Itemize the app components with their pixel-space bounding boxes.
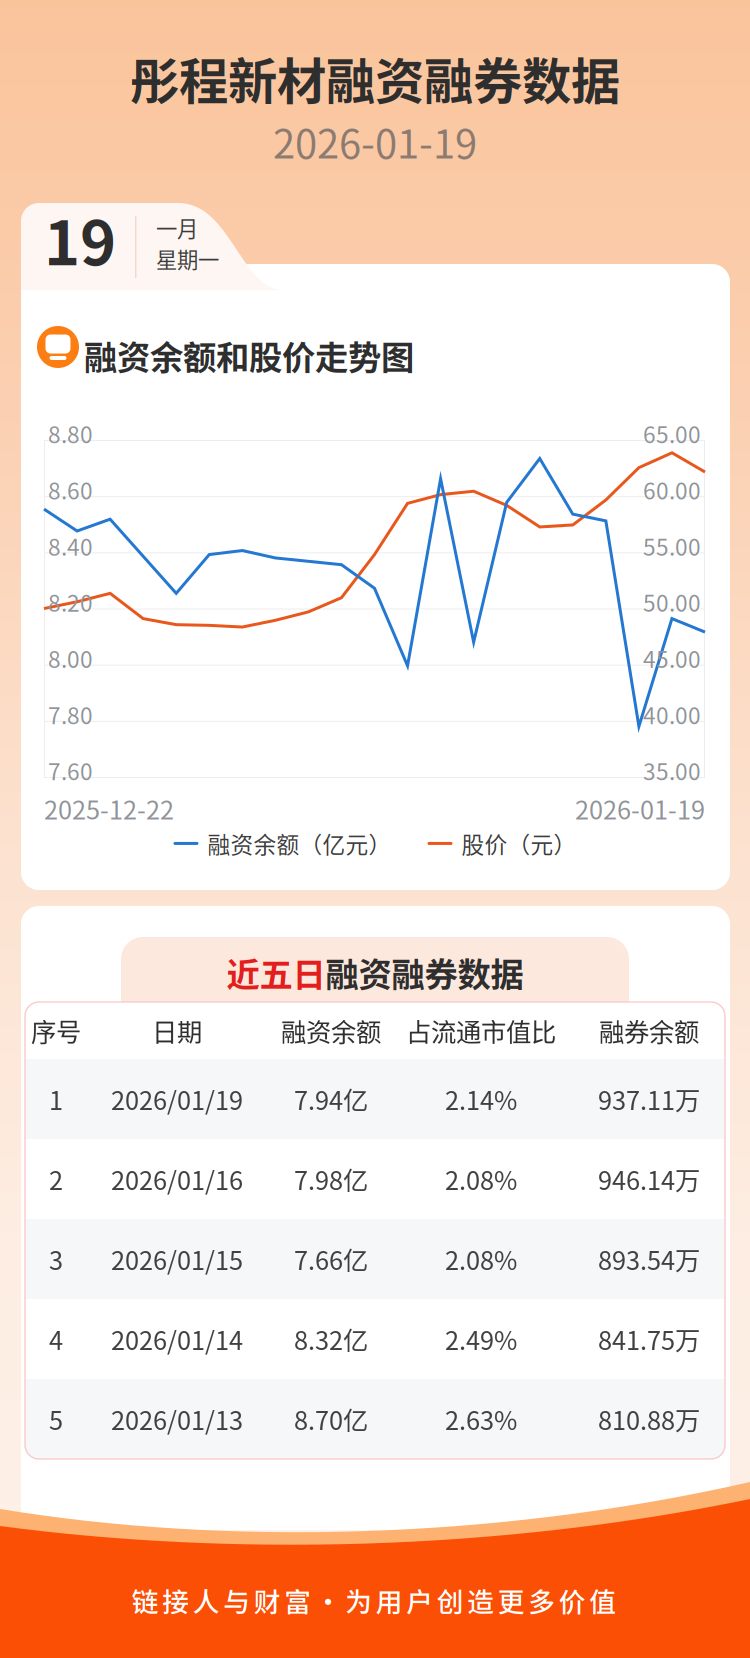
staticText: 7.94亿 <box>294 1081 368 1117</box>
staticText: 4 <box>49 1321 63 1357</box>
staticText: 2.08% <box>445 1161 517 1197</box>
staticText: 2026/01/15 <box>111 1241 243 1277</box>
staticText: 937.11万 <box>598 1081 700 1117</box>
staticText: 19 <box>44 194 116 283</box>
staticText: 融资余额 <box>281 1012 381 1049</box>
staticText: 35.00 <box>643 754 701 787</box>
staticText: 序号 <box>31 1012 81 1049</box>
staticText: 8.80 <box>48 417 93 450</box>
staticText: 占流通市值比 <box>406 1012 556 1049</box>
staticText: 日期 <box>152 1012 202 1049</box>
staticText: 2026/01/19 <box>111 1081 243 1117</box>
staticText: 2.63% <box>445 1401 517 1437</box>
staticText: 810.88万 <box>598 1401 700 1437</box>
staticText: 50.00 <box>643 585 701 618</box>
staticText: 融券余额 <box>599 1012 699 1049</box>
staticText: 一月 <box>156 212 198 243</box>
staticText: 股价（元） <box>461 827 576 860</box>
staticText: 7.60 <box>48 754 93 787</box>
staticText: 2026-01-19 <box>575 790 705 827</box>
staticText: 2.08% <box>445 1241 517 1277</box>
staticText: 2026-01-19 <box>273 112 477 170</box>
staticText: 近五日 <box>226 948 325 996</box>
staticText: 8.40 <box>48 529 93 562</box>
staticText: 8.20 <box>48 585 93 618</box>
staticText: 2.14% <box>445 1081 517 1117</box>
staticText: 融资余额（亿元） <box>207 827 391 860</box>
staticText: 8.00 <box>48 642 93 674</box>
staticText: 5 <box>49 1401 63 1437</box>
staticText: 融资融券数据 <box>325 948 523 996</box>
staticText: 60.00 <box>643 473 701 506</box>
staticText: 星期一 <box>156 243 219 274</box>
staticText: 946.14万 <box>598 1161 700 1197</box>
staticText: 2026/01/13 <box>111 1401 243 1437</box>
staticText: 链接人与财富·为用户创造更多价值 <box>132 1581 616 1619</box>
staticText: 65.00 <box>643 417 701 450</box>
staticText: 2 <box>49 1161 63 1197</box>
staticText: 8.70亿 <box>294 1401 368 1437</box>
staticText: 2.49% <box>445 1321 517 1357</box>
staticText: 彤程新材融资融券数据 <box>130 42 620 113</box>
staticText: 45.00 <box>643 642 701 674</box>
staticText: 7.66亿 <box>294 1241 368 1277</box>
staticText: 55.00 <box>643 529 701 562</box>
staticText: 8.32亿 <box>294 1321 368 1357</box>
staticText: 893.54万 <box>598 1241 700 1277</box>
staticText: 40.00 <box>643 698 701 731</box>
staticText: 3 <box>49 1241 63 1277</box>
staticText: 8.60 <box>48 473 93 506</box>
staticText: 841.75万 <box>598 1321 700 1357</box>
staticText: 2026/01/16 <box>111 1161 243 1197</box>
staticText: 融资余额和股价走势图 <box>84 331 414 379</box>
staticText: 7.98亿 <box>294 1161 368 1197</box>
staticText: 1 <box>49 1081 63 1117</box>
staticText: 7.80 <box>48 698 93 731</box>
staticText: 2025-12-22 <box>44 790 174 827</box>
staticText: 2026/01/14 <box>111 1321 243 1357</box>
